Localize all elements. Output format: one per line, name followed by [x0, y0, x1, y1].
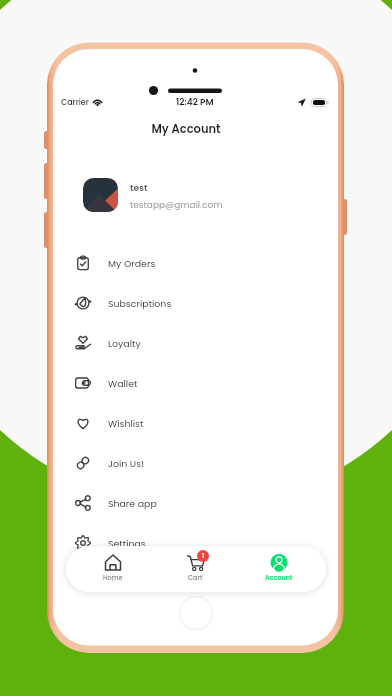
staticText: Settings — [108, 537, 146, 550]
staticText: Loyalty — [108, 337, 141, 350]
button[interactable]: Account — [237, 546, 320, 592]
staticText: Subscriptions — [108, 297, 172, 310]
staticText: Cart — [188, 573, 203, 582]
other: 1 item in cart — [197, 550, 209, 562]
button[interactable]: Wallet — [53, 363, 337, 403]
staticText: My Account — [44, 121, 328, 137]
button[interactable]: 1 item in cart — [154, 546, 237, 592]
staticText: 1 — [202, 552, 205, 560]
button[interactable]: Settings — [53, 523, 337, 563]
button[interactable]: Wishlist — [53, 403, 337, 443]
staticText: Carrier — [61, 97, 89, 108]
staticText: Wallet — [108, 377, 138, 390]
button[interactable]: Join Us! — [53, 443, 337, 483]
button[interactable]: Loyalty — [53, 323, 337, 363]
staticText: 12:42 PM — [176, 96, 214, 109]
staticText: My Orders — [108, 257, 156, 270]
staticText: Home — [103, 573, 123, 582]
staticText: Join Us! — [108, 457, 144, 470]
staticText: testapp@gmail.com — [130, 199, 223, 212]
button[interactable]: My Orders — [53, 243, 337, 283]
staticText: test — [130, 182, 148, 195]
staticText: Share app — [108, 497, 157, 510]
staticText: Account — [265, 573, 293, 582]
button[interactable]: Share app — [53, 483, 337, 523]
button[interactable]: Subscriptions — [53, 283, 337, 323]
staticText: Wishlist — [108, 417, 144, 430]
button[interactable]: Home — [72, 546, 154, 592]
button[interactable]: test — [83, 178, 367, 212]
